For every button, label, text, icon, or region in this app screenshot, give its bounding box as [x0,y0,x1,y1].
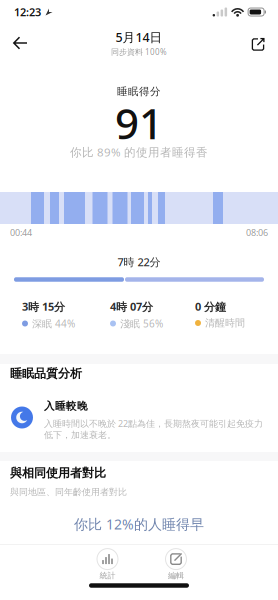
staticText: 你比 12%的人睡得早 [74,515,204,533]
staticText: 清醒時間 [205,317,245,329]
button[interactable]: 編輯 [165,549,186,580]
button[interactable]: 統計 [97,549,118,580]
staticText: 睡眠得分 [117,85,161,98]
staticText: 入睡時間以不晚於 22點為佳，長期熬夜可能引起免疫力 [44,417,263,429]
button[interactable]: Back [0,28,28,58]
staticText: 你比 89% 的使用者睡得香 [70,144,208,160]
staticText: 編輯 [168,571,184,580]
staticText: 3時 15分 [22,299,65,314]
staticText: 91 [115,95,163,151]
staticText: 08:06 [246,226,268,238]
staticText: 入睡較晚 [44,400,88,412]
staticText: 12:23 [14,5,41,19]
staticText: 4時 07分 [110,299,153,314]
staticText: 7時 22分 [117,255,160,269]
staticText: 同步資料 100% [111,46,167,57]
button[interactable]: Share [251,28,278,58]
staticText: 00:44 [10,226,32,238]
staticText: 睡眠品質分析 [10,366,82,381]
staticText: 與同地區、同年齡使用者對比 [10,486,127,498]
staticText: 5月14日 [115,29,162,45]
staticText: 低下，加速衰老。 [44,429,116,441]
staticText: 統計 [99,571,115,580]
staticText: 淺眠 56% [120,317,163,330]
staticText: 與相同使用者對比 [10,466,106,480]
staticText: 0 分鐘 [195,299,226,314]
staticText: 深眠 44% [32,317,75,330]
